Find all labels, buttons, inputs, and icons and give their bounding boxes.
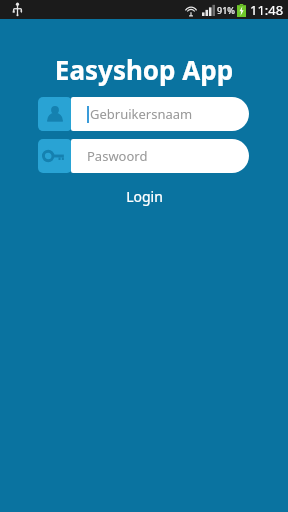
staticText: Gebruikersnaam	[90, 105, 193, 123]
staticText: Login	[126, 187, 163, 206]
button[interactable]: Password	[38, 139, 250, 173]
staticText: 91%	[217, 4, 235, 16]
button[interactable]: Login	[0, 185, 288, 208]
other: Password	[38, 139, 72, 173]
staticText: Paswoord	[87, 147, 148, 165]
staticText: Easyshop App	[0, 52, 288, 87]
other: Username	[38, 97, 72, 131]
staticText: 11:48	[250, 1, 284, 19]
button[interactable]: Username	[38, 97, 250, 131]
